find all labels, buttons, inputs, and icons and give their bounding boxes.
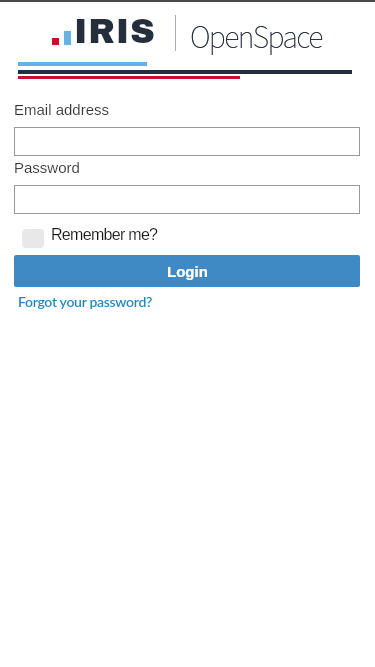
staticText: IRIS	[74, 13, 156, 50]
staticText: Email address	[14, 101, 110, 118]
button[interactable]	[14, 127, 360, 156]
button[interactable]	[22, 229, 44, 248]
button[interactable]: Forgot your password?	[18, 293, 153, 310]
button[interactable]: Login	[14, 255, 360, 287]
staticText: OpenSpace	[190, 16, 322, 61]
staticText: Password	[14, 159, 80, 176]
button[interactable]	[14, 185, 360, 214]
button[interactable]: Remember me?	[51, 226, 158, 244]
staticText: Login	[167, 263, 208, 280]
staticText: OpenSpace	[190, 16, 322, 61]
